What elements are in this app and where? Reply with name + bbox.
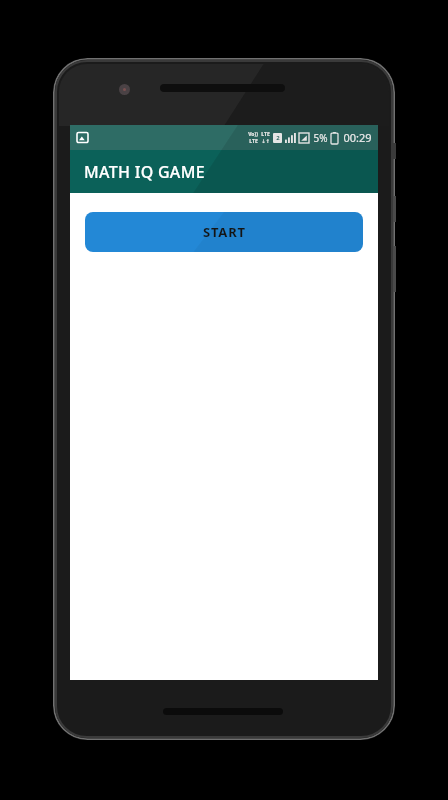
- staticText: MATH IQ GAME: [84, 161, 205, 183]
- staticText: Vo)): [248, 131, 258, 138]
- staticText: 2: [276, 134, 280, 142]
- staticText: 00:29: [343, 130, 372, 145]
- staticText: 5%: [313, 131, 328, 145]
- staticText: LTE: [249, 138, 258, 145]
- staticText: START: [203, 223, 246, 241]
- staticText: ↓↑: [261, 138, 270, 144]
- button[interactable]: START: [85, 212, 363, 252]
- staticText: LTE: [261, 131, 270, 138]
